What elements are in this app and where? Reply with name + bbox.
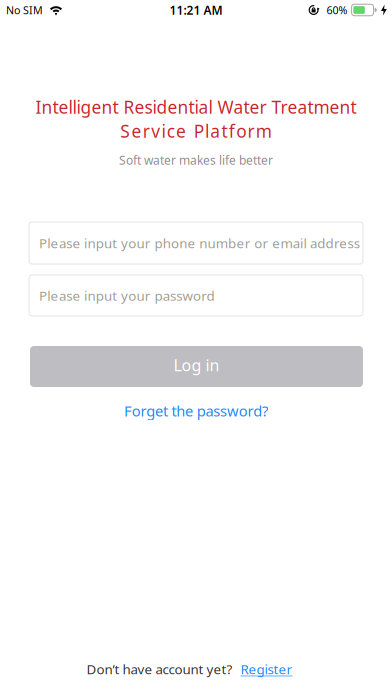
- staticText: 11:21 AM: [169, 2, 222, 18]
- staticText: Intelligent Residential Water Treatment: [35, 95, 356, 118]
- staticText: Soft water makes life better: [119, 152, 273, 168]
- staticText: Log in: [173, 354, 219, 376]
- staticText: Please input your password: [39, 287, 214, 304]
- staticText: Register: [240, 660, 292, 678]
- secureTextField[interactable]: Please input your password: [39, 287, 363, 304]
- button[interactable]: Log in: [30, 346, 363, 387]
- staticText: No SIM: [6, 3, 43, 17]
- staticText: 60%: [327, 3, 348, 17]
- button[interactable]: Forget the password?: [124, 401, 268, 420]
- staticText: Service Platform: [120, 119, 272, 142]
- button[interactable]: Register: [240, 660, 292, 678]
- staticText: Please input your phone number or email …: [39, 234, 360, 252]
- staticText: Don’t have account yet?: [86, 660, 232, 678]
- staticText: Forget the password?: [124, 401, 268, 420]
- textField[interactable]: Please input your phone number or email …: [39, 234, 363, 252]
